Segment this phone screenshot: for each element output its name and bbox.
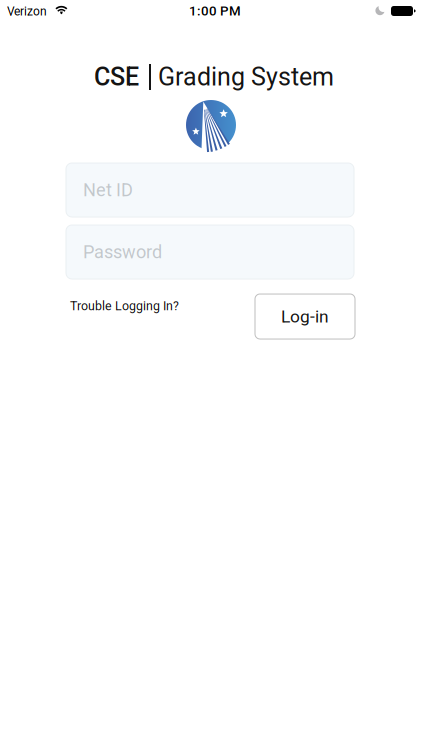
staticText: Grading System <box>158 62 334 92</box>
staticText: CSE <box>94 62 139 92</box>
button[interactable]: Password <box>66 225 354 279</box>
staticText: Log-in <box>281 306 329 327</box>
staticText: Trouble Logging In? <box>70 299 179 313</box>
button[interactable]: Trouble Logging In? <box>70 298 190 314</box>
button[interactable]: Net ID <box>66 163 354 217</box>
staticText: Password <box>83 241 162 263</box>
button[interactable]: Log-in <box>255 294 355 339</box>
staticText: Net ID <box>83 179 133 201</box>
staticText: 1:00 PM <box>189 3 241 19</box>
staticText: Verizon <box>7 4 47 19</box>
